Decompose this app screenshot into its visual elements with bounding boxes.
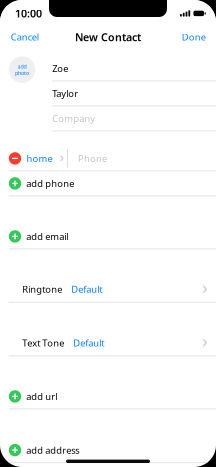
button[interactable]: add address [0, 438, 216, 463]
button[interactable]: add email [0, 224, 216, 249]
staticText: New Contact [75, 30, 141, 44]
staticText: add phone [26, 177, 74, 190]
staticText: Ringtone [22, 283, 62, 295]
staticText: Done [182, 31, 206, 43]
staticText: home [27, 152, 53, 165]
staticText: Phone [78, 152, 107, 165]
button[interactable]: add url [0, 384, 216, 409]
staticText: Default [73, 337, 104, 349]
staticText: Cancel [11, 31, 39, 43]
staticText: 10:00 [15, 6, 42, 20]
staticText: add [18, 63, 27, 70]
button[interactable]: Add photo [9, 56, 35, 83]
staticText: Taylor [52, 87, 78, 100]
button[interactable]: Ringtone [0, 277, 216, 303]
staticText: Zoe [52, 62, 68, 75]
staticText: Text Tone [22, 337, 64, 349]
staticText: Company [52, 112, 95, 125]
staticText: Default [71, 283, 102, 295]
button[interactable]: Done [174, 25, 216, 49]
button[interactable]: Text Tone [0, 330, 216, 356]
button[interactable]: Cancel [0, 25, 47, 49]
staticText: add url [26, 390, 57, 403]
staticText: photo [15, 69, 29, 76]
staticText: add address [26, 444, 79, 456]
button[interactable]: add phone [0, 171, 216, 196]
staticText: add email [26, 230, 68, 243]
button[interactable]: home [0, 146, 216, 171]
